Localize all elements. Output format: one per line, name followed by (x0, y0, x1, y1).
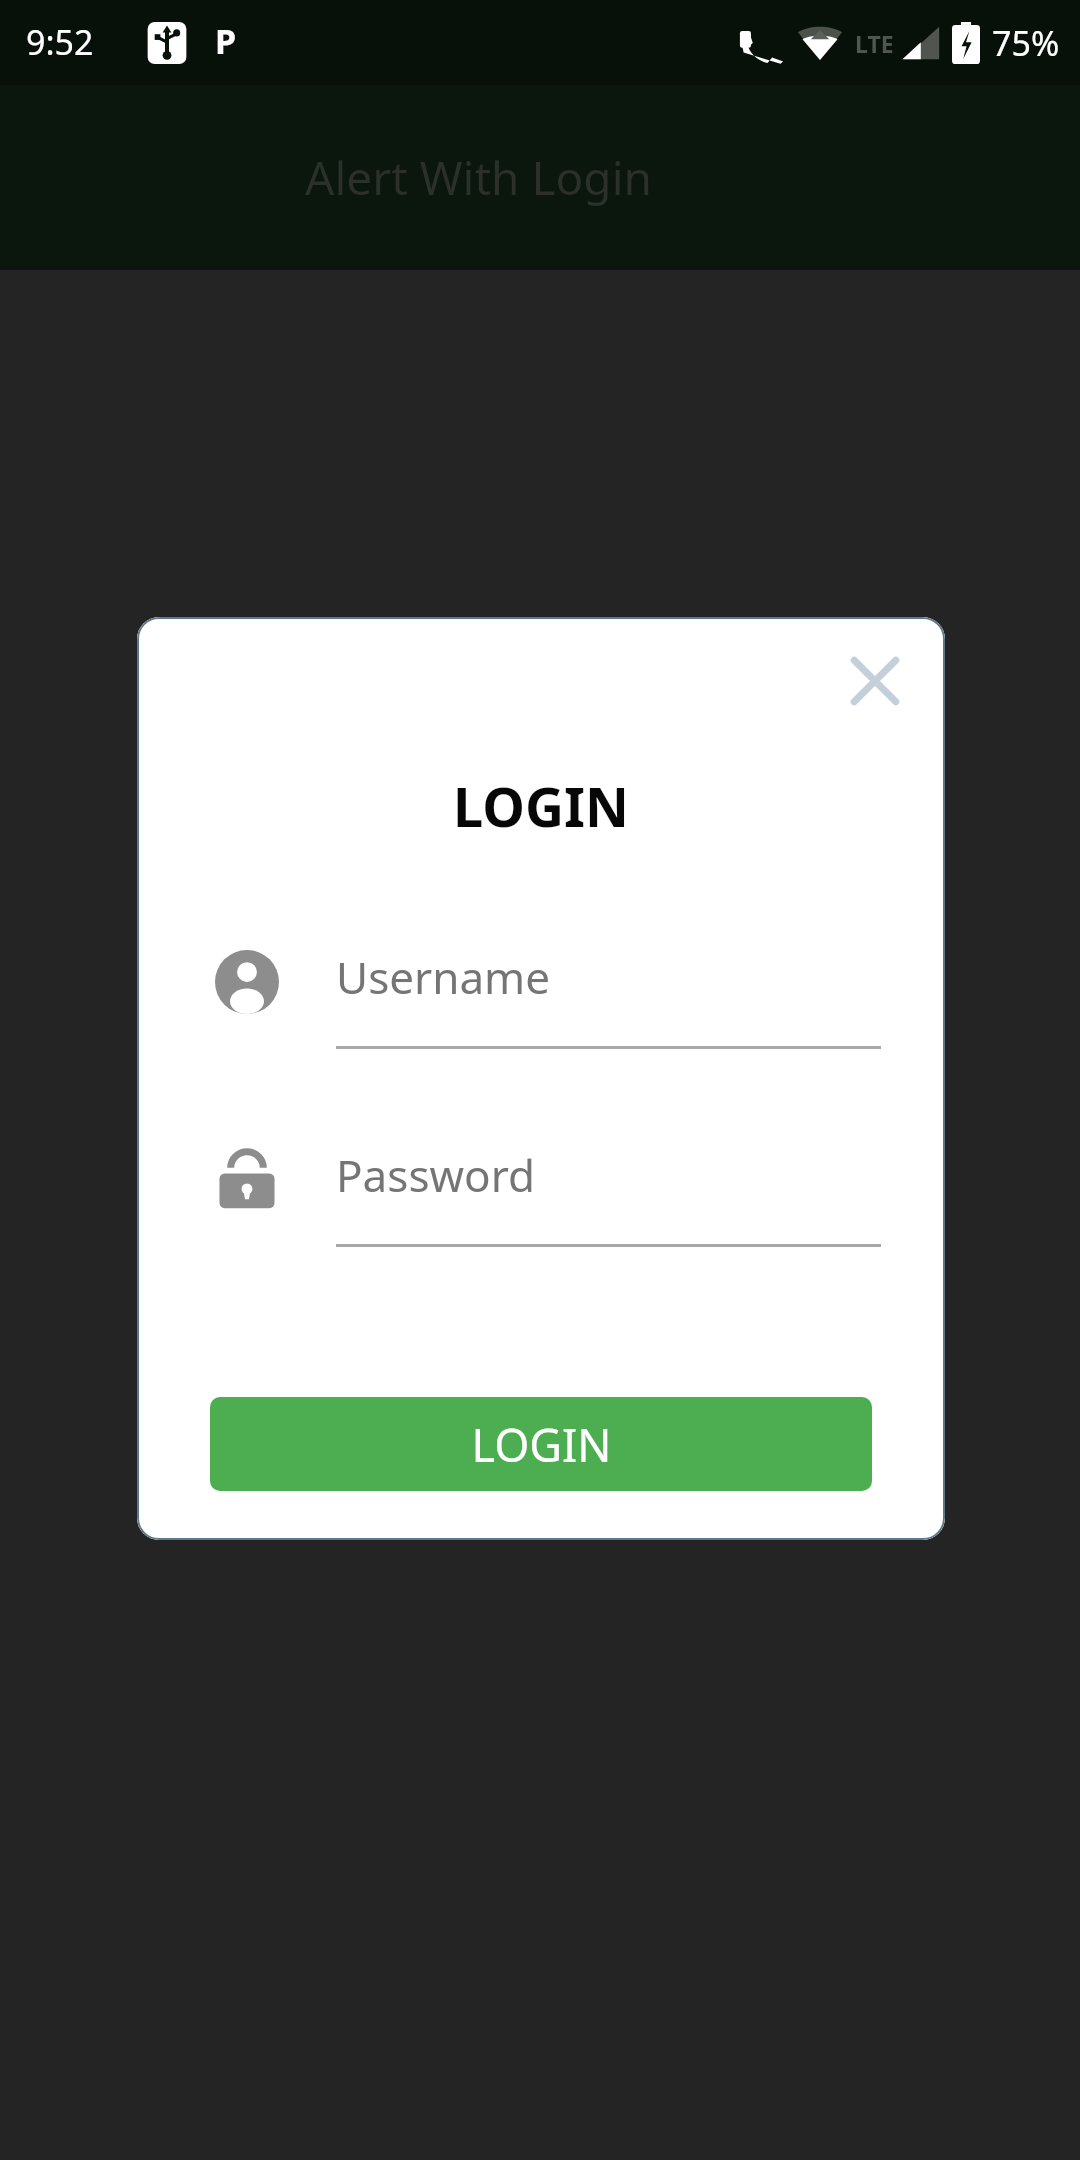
staticText: Password (336, 1145, 536, 1205)
staticText: LOGIN (471, 1414, 612, 1475)
button[interactable]: Password (137, 1133, 945, 1313)
staticText: Username (336, 947, 551, 1007)
button[interactable]: LOGIN (210, 1397, 872, 1491)
button[interactable]: Close (833, 639, 917, 723)
staticText: P (215, 18, 237, 64)
staticText: LOGIN (453, 769, 629, 843)
button[interactable]: Username (137, 935, 945, 1115)
staticText: Alert With Login (305, 146, 652, 209)
staticText: 9:52 (26, 19, 94, 65)
staticText: 75% (992, 20, 1060, 66)
staticText: LTE (855, 28, 894, 59)
